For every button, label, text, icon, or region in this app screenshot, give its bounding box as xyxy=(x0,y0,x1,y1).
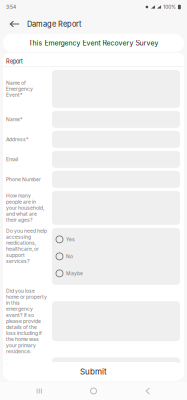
staticText: Did you lose home or property in this em… xyxy=(6,288,47,354)
button[interactable]: Submit xyxy=(3,362,184,381)
staticText: How many people are in your household, a… xyxy=(6,193,44,223)
button[interactable]: Recents xyxy=(24,382,54,400)
staticText: Report xyxy=(6,58,23,65)
button[interactable]: Back xyxy=(8,14,21,33)
staticText: Maybe xyxy=(66,270,83,276)
button[interactable]: Yes xyxy=(52,231,180,248)
button[interactable]: Home xyxy=(78,382,108,400)
staticText: Name of Emergency Event* xyxy=(6,80,33,98)
staticText: 3:54 xyxy=(6,4,16,10)
staticText: Phone Number xyxy=(6,176,41,182)
button[interactable]: Maybe xyxy=(52,265,180,282)
staticText: 100% xyxy=(163,4,176,10)
staticText: This Emergency Event Recovery Survey xyxy=(28,39,158,47)
staticText: Yes xyxy=(66,236,75,242)
staticText: Do you need help accessing medications, … xyxy=(6,228,47,264)
staticText: Email xyxy=(6,156,18,162)
button[interactable]: Back xyxy=(133,382,163,400)
staticText: Address* xyxy=(6,136,29,142)
staticText: Submit xyxy=(80,367,107,376)
staticText: Damage Report xyxy=(27,19,81,28)
staticText: No xyxy=(66,253,73,259)
staticText: Name* xyxy=(6,116,23,122)
button[interactable]: No xyxy=(52,248,180,265)
